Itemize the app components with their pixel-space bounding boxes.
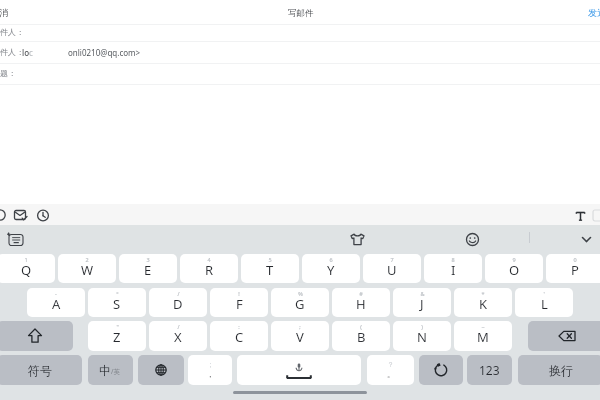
button[interactable]: Switch language (138, 355, 184, 385)
button[interactable]: 6 (302, 254, 360, 283)
staticText: ？ (387, 360, 394, 369)
staticText: 主题： (0, 68, 16, 78)
staticText: 收件人： (0, 27, 24, 37)
button[interactable]: ~ (454, 321, 512, 351)
button[interactable]: 1 (0, 254, 55, 283)
button[interactable]: 3 (119, 254, 177, 283)
button[interactable]: - (27, 288, 85, 317)
staticText: 7 (390, 256, 394, 263)
staticText: 0 (573, 256, 577, 263)
staticText: E (144, 261, 152, 279)
button[interactable]: * (454, 288, 512, 317)
staticText: G (295, 295, 305, 313)
staticText: W (81, 261, 94, 279)
button[interactable]: 换行 (518, 355, 600, 385)
staticText: : (238, 323, 240, 330)
button[interactable]: Format text (571, 206, 590, 225)
button[interactable]: & (393, 288, 451, 317)
staticText: 6 (329, 256, 333, 263)
staticText: 1 (24, 256, 28, 263)
staticText: F (236, 295, 243, 313)
staticText: /英 (111, 367, 120, 376)
staticText: ° (116, 290, 119, 297)
staticText: P (571, 261, 579, 279)
button[interactable]: 符号 (0, 355, 82, 385)
staticText: ( (360, 323, 362, 330)
staticText: lo (22, 47, 30, 58)
button[interactable]: Emoji (463, 230, 482, 249)
button[interactable]: / (149, 321, 207, 351)
button[interactable]: 7 (363, 254, 421, 283)
staticText: ， (206, 369, 214, 379)
button[interactable]: 2 (58, 254, 116, 283)
button[interactable]: Input options (7, 232, 24, 249)
button[interactable]: Chinese / English (88, 355, 133, 385)
button[interactable]: ; (271, 321, 329, 351)
staticText: ; (299, 323, 301, 330)
button[interactable]: Add attachment (0, 206, 9, 224)
button[interactable]: More formatting (591, 206, 600, 224)
button[interactable]: : (210, 321, 268, 351)
staticText: N (417, 328, 427, 346)
staticText: 写邮件 (288, 8, 314, 19)
button[interactable]: Keyboard theme (348, 230, 367, 249)
staticText: / (177, 290, 180, 297)
button[interactable]: Shift (0, 321, 73, 351)
staticText: 2 (85, 256, 89, 263)
button[interactable]: 。 (367, 355, 414, 385)
button[interactable]: / (149, 288, 207, 317)
staticText: H (356, 295, 366, 313)
staticText: X (174, 328, 182, 346)
staticText: U (387, 261, 397, 279)
button[interactable]: ( (332, 321, 390, 351)
staticText: M (477, 328, 489, 346)
staticText: T (266, 261, 274, 279)
button[interactable]: ， (188, 355, 232, 385)
button[interactable]: ) (393, 321, 451, 351)
staticText: / (177, 323, 180, 330)
button[interactable]: 0 (546, 254, 600, 283)
staticText: B (357, 328, 366, 346)
button[interactable]: 9 (485, 254, 543, 283)
button[interactable]: Mail template (11, 206, 29, 224)
staticText: % (298, 290, 303, 297)
staticText: * (481, 290, 485, 297)
staticText: ； (207, 360, 214, 369)
button[interactable]: % (271, 288, 329, 317)
staticText: K (479, 295, 488, 313)
button[interactable]: # (332, 288, 390, 317)
staticText: J (420, 295, 424, 313)
staticText: L (541, 295, 548, 313)
button[interactable]: 4 (180, 254, 238, 283)
staticText: # (359, 290, 363, 297)
button[interactable]: 5 (241, 254, 299, 283)
staticText: I (451, 261, 456, 279)
button[interactable]: ' (515, 288, 573, 317)
staticText: 9 (512, 256, 516, 263)
staticText: ! (238, 290, 240, 297)
button[interactable]: ! (210, 288, 268, 317)
button[interactable]: Schedule send (34, 206, 52, 224)
staticText: 发件人： (0, 47, 24, 57)
staticText: V (296, 328, 304, 346)
button[interactable]: 发送 (588, 4, 600, 21)
staticText: O (509, 261, 520, 279)
button[interactable]: Space (237, 355, 361, 385)
staticText: 3 (146, 256, 150, 263)
staticText: 。 (387, 369, 395, 379)
button[interactable]: Hide keyboard (577, 230, 596, 249)
button[interactable]: 123 (467, 355, 512, 385)
staticText: 123 (479, 362, 500, 378)
staticText: 发送 (588, 7, 600, 18)
button[interactable]: 取消 (0, 5, 28, 20)
button[interactable]: ° (88, 288, 146, 317)
button[interactable]: " (88, 321, 146, 351)
button[interactable]: Backspace (528, 321, 600, 351)
button[interactable]: 8 (424, 254, 482, 283)
staticText: Z (113, 328, 121, 346)
staticText: A (52, 295, 61, 313)
staticText: c (29, 47, 33, 58)
button[interactable]: Undo (419, 355, 463, 385)
staticText: R (205, 261, 214, 279)
staticText: 中 (99, 363, 111, 378)
